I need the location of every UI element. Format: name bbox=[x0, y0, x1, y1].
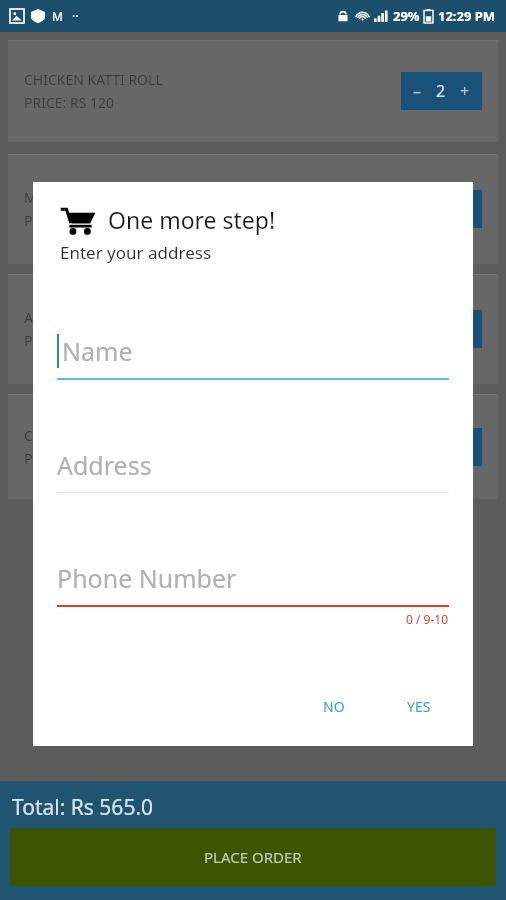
staticText: CHICKEN KATTI ROLL bbox=[24, 70, 163, 89]
button[interactable]: A bbox=[8, 274, 498, 384]
button[interactable]: – bbox=[406, 190, 482, 228]
button[interactable]: Name bbox=[57, 334, 449, 380]
staticText: P bbox=[24, 331, 33, 350]
staticText: C bbox=[24, 426, 33, 445]
staticText: – bbox=[413, 80, 422, 102]
staticText: NO bbox=[323, 697, 345, 716]
staticText: 0 / 9-10 bbox=[406, 611, 449, 627]
button[interactable]: – bbox=[401, 72, 482, 110]
staticText: M bbox=[24, 188, 37, 207]
staticText: Phone Number bbox=[57, 561, 237, 595]
staticText: One more step! bbox=[108, 204, 276, 235]
staticText: P bbox=[24, 211, 33, 230]
button[interactable]: – bbox=[406, 310, 482, 348]
staticText: A bbox=[24, 308, 33, 327]
button[interactable]: Address bbox=[57, 448, 449, 493]
button[interactable]: C bbox=[8, 394, 498, 499]
button[interactable]: YES bbox=[391, 689, 447, 724]
button[interactable]: NO bbox=[305, 689, 363, 724]
staticText: Enter your address bbox=[60, 241, 212, 264]
staticText: 12:29 PM bbox=[438, 7, 496, 25]
button[interactable]: PLACE ORDER bbox=[10, 828, 496, 886]
button[interactable]: CHICKEN KATTI ROLL bbox=[8, 40, 498, 142]
staticText: YES bbox=[407, 697, 431, 716]
staticText: P bbox=[24, 449, 33, 468]
button[interactable]: M bbox=[8, 154, 498, 264]
staticText: Total: Rs 565.0 bbox=[12, 793, 154, 822]
other: Shopping cart bbox=[60, 205, 96, 235]
staticText: PRICE: RS 120 bbox=[24, 93, 115, 112]
staticText: M bbox=[52, 8, 63, 24]
staticText: ·· bbox=[72, 8, 79, 24]
staticText: 2 bbox=[436, 80, 446, 102]
staticText: + bbox=[460, 80, 470, 102]
staticText: Name bbox=[62, 334, 133, 368]
staticText: 29% bbox=[393, 7, 420, 25]
button[interactable]: Phone Number bbox=[57, 561, 449, 607]
staticText: Address bbox=[57, 448, 152, 482]
button[interactable]: – bbox=[406, 428, 482, 466]
staticText: PLACE ORDER bbox=[204, 847, 302, 867]
